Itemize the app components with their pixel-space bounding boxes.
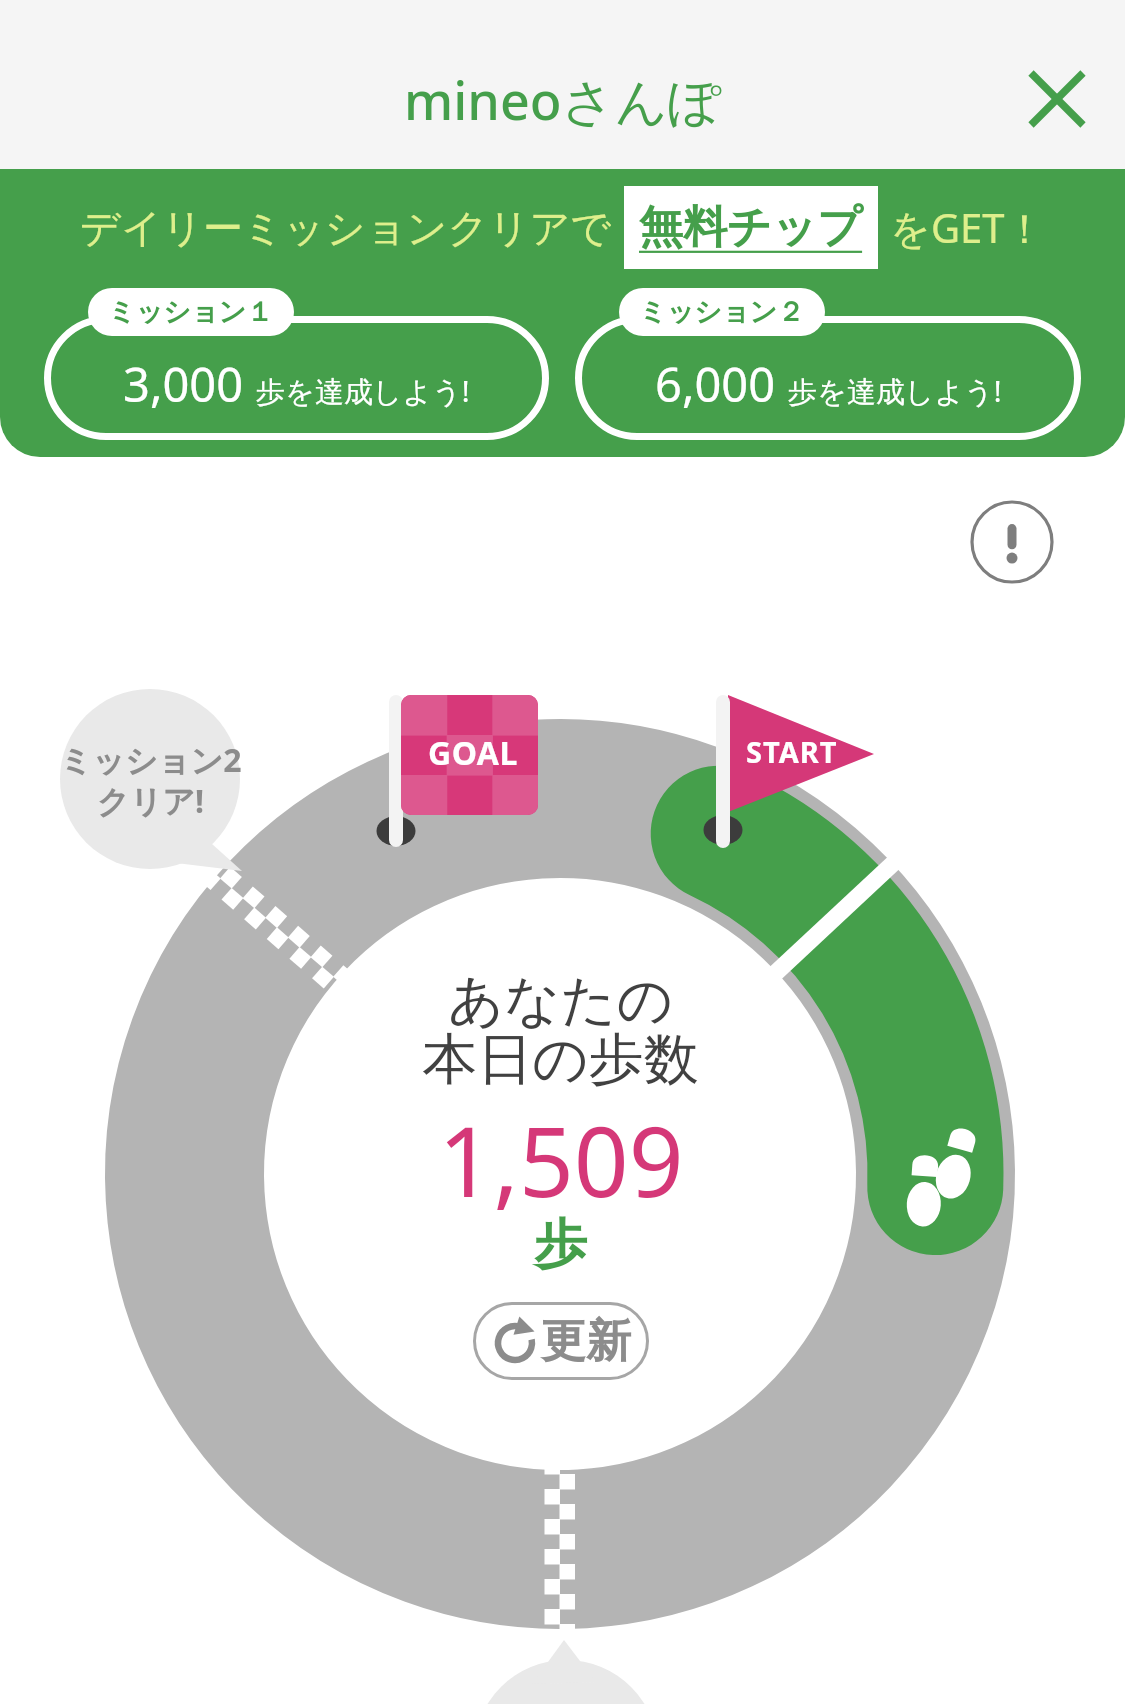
button[interactable]: 3,000 xyxy=(44,316,549,440)
staticText: 無料チップ xyxy=(639,200,863,255)
staticText: 1,509 xyxy=(438,1094,684,1225)
staticText: mineoさんぽ xyxy=(404,64,722,135)
staticText: 6,000 xyxy=(655,352,776,416)
staticText: をGET！ xyxy=(890,200,1045,255)
staticText: 歩を達成しよう! xyxy=(788,371,1002,411)
staticText: ミッション2 クリア! xyxy=(59,738,242,823)
staticText: ミッション１ xyxy=(108,295,274,329)
button[interactable]: Information xyxy=(966,496,1058,588)
staticText: 歩を達成しよう! xyxy=(256,371,470,411)
staticText: 更新 xyxy=(541,1313,631,1370)
staticText: 3,000 xyxy=(123,352,244,416)
button[interactable]: 更新 xyxy=(473,1302,649,1380)
staticText: START xyxy=(746,732,838,771)
staticText: デイリーミッションクリアで xyxy=(80,203,612,253)
staticText: 歩 xyxy=(534,1211,587,1278)
staticText: ミッション２ xyxy=(639,295,805,329)
staticText: GOAL xyxy=(428,731,518,775)
button[interactable]: Close xyxy=(1009,51,1105,147)
button[interactable]: 6,000 xyxy=(575,316,1081,440)
staticText: あなたの 本日の歩数 xyxy=(422,966,699,1094)
